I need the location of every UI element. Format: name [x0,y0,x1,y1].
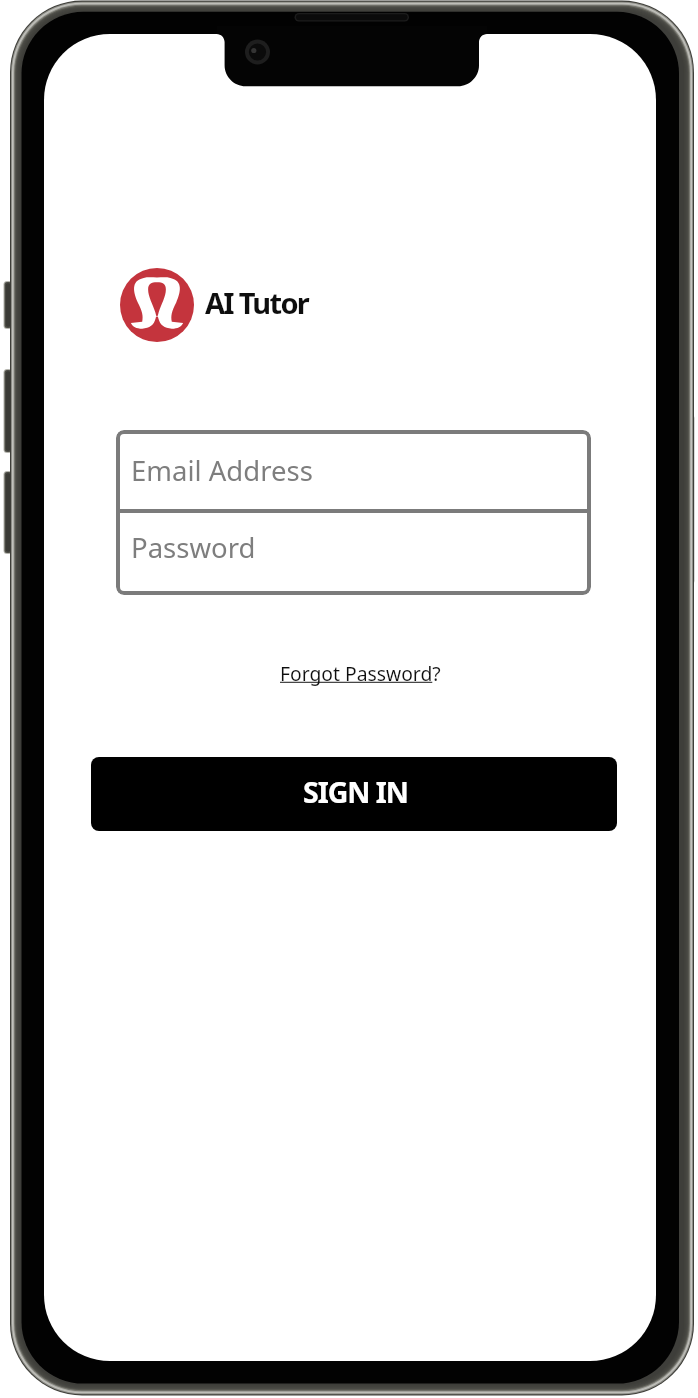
button[interactable]: Email Address [116,430,591,509]
button[interactable]: SIGN IN [91,757,617,831]
staticText: AI Tutor [205,283,309,322]
button[interactable]: Password [116,513,591,595]
other: lululemon AI Tutor logo [120,268,194,342]
staticText: Email Address [131,452,313,489]
staticText: Password [131,529,256,566]
staticText: SIGN IN [303,773,408,812]
staticText: Forgot Password? [280,660,441,686]
button[interactable]: Forgot Password? [280,660,441,686]
